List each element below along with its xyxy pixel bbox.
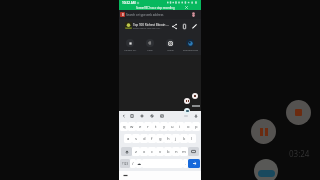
staticText: x bbox=[143, 149, 146, 155]
staticText: m bbox=[182, 149, 186, 155]
staticText: ☁ bbox=[137, 161, 142, 166]
button[interactable]: whtsapp/msg bbox=[181, 39, 199, 52]
button[interactable]: Edit bbox=[191, 23, 198, 30]
staticText: 3 bbox=[122, 13, 124, 17]
staticText: bitinfocharts.com/top-100... bbox=[133, 27, 169, 30]
staticText: whtsapp/msg bbox=[183, 49, 198, 52]
staticText: i bbox=[179, 124, 181, 130]
staticText: Gmail bbox=[167, 49, 174, 52]
button[interactable]: r bbox=[144, 122, 152, 131]
button[interactable]: Copy bbox=[141, 39, 159, 52]
button[interactable]: l bbox=[188, 134, 196, 143]
staticText: Search or type web address bbox=[126, 13, 171, 17]
button[interactable]: e bbox=[136, 122, 144, 131]
staticText: ?123 bbox=[122, 162, 129, 166]
button[interactable]: Gmail bbox=[161, 39, 179, 52]
button[interactable]: j bbox=[172, 134, 180, 143]
staticText: c bbox=[151, 149, 154, 155]
button[interactable]: s bbox=[132, 134, 140, 143]
staticText: 10:32 AM bbox=[122, 1, 136, 5]
staticText: Copy bbox=[147, 49, 153, 52]
button[interactable]: Menu bbox=[191, 12, 196, 17]
button[interactable]: Camera bbox=[254, 159, 278, 180]
button[interactable]: . bbox=[183, 159, 188, 168]
staticText: o bbox=[187, 124, 190, 130]
staticText: b bbox=[167, 149, 170, 155]
button[interactable]: h bbox=[164, 134, 172, 143]
staticText: Nearby Sh.. bbox=[124, 49, 137, 52]
staticText: 03:24 bbox=[289, 148, 310, 159]
staticText: q bbox=[123, 124, 126, 130]
staticText: w bbox=[130, 124, 134, 130]
staticText: t bbox=[155, 124, 157, 130]
staticText: d bbox=[143, 136, 146, 142]
button[interactable]: v bbox=[156, 147, 164, 156]
button[interactable]: Keyboard tool bbox=[130, 114, 134, 118]
button[interactable]: d bbox=[140, 134, 148, 143]
button[interactable]: ?123 bbox=[120, 159, 130, 168]
button[interactable]: Stop recording bbox=[286, 100, 311, 125]
staticText: p bbox=[195, 124, 198, 130]
button[interactable]: b bbox=[164, 147, 172, 156]
button[interactable]: Tabs bbox=[120, 12, 125, 17]
staticText: h bbox=[167, 136, 170, 142]
button[interactable]: m bbox=[180, 147, 188, 156]
button[interactable]: y bbox=[160, 122, 168, 131]
button[interactable]: n bbox=[172, 147, 180, 156]
staticText: k bbox=[183, 136, 186, 142]
button[interactable]: Keyboard tool bbox=[160, 114, 164, 118]
staticText: . bbox=[185, 161, 187, 167]
button[interactable]: Send to device bbox=[181, 23, 188, 30]
button[interactable]: Keyboard tool bbox=[140, 114, 144, 118]
button[interactable]: Pause recording bbox=[251, 119, 276, 144]
button[interactable]: a bbox=[124, 134, 132, 143]
staticText: z bbox=[135, 149, 137, 155]
button[interactable]: c bbox=[148, 147, 156, 156]
button[interactable]: Back bbox=[123, 174, 128, 177]
staticText: j bbox=[175, 136, 177, 142]
button[interactable]: / bbox=[130, 159, 136, 168]
button[interactable] bbox=[188, 147, 199, 156]
button[interactable]: w bbox=[128, 122, 136, 131]
button[interactable]: u bbox=[168, 122, 176, 131]
button[interactable]: x bbox=[140, 147, 148, 156]
staticText: g bbox=[159, 136, 162, 142]
button[interactable]: z bbox=[132, 147, 140, 156]
staticText: Top 100 Richest Bitcoin ... bbox=[133, 23, 169, 27]
staticText: / bbox=[132, 161, 134, 167]
staticText: a bbox=[127, 136, 130, 142]
staticText: u bbox=[171, 124, 174, 130]
button[interactable] bbox=[121, 147, 132, 156]
button[interactable]: Nearby Sh.. bbox=[121, 39, 139, 52]
button[interactable]: g bbox=[156, 134, 164, 143]
staticText: s bbox=[135, 136, 138, 142]
staticText: y bbox=[163, 124, 166, 130]
staticText: e bbox=[139, 124, 142, 130]
button[interactable]: p bbox=[192, 122, 200, 131]
staticText: r bbox=[147, 124, 149, 130]
button[interactable]: q bbox=[120, 122, 128, 131]
staticText: f bbox=[151, 136, 153, 142]
button[interactable]: f bbox=[148, 134, 156, 143]
button[interactable]: Share bbox=[171, 23, 178, 30]
button[interactable]: ☁ bbox=[136, 159, 142, 168]
button[interactable]: Keyboard tool bbox=[150, 114, 154, 118]
button[interactable]: t bbox=[152, 122, 160, 131]
staticText: ScreenREC has a stop recording bbox=[136, 6, 182, 10]
button[interactable]: i bbox=[176, 122, 184, 131]
button[interactable]: Dismiss bbox=[185, 6, 188, 9]
staticText: l bbox=[191, 136, 193, 142]
button[interactable]: k bbox=[180, 134, 188, 143]
button[interactable]: o bbox=[184, 122, 192, 131]
staticText: v bbox=[159, 149, 162, 155]
button[interactable]: Go bbox=[188, 159, 200, 168]
staticText: n bbox=[175, 149, 178, 155]
